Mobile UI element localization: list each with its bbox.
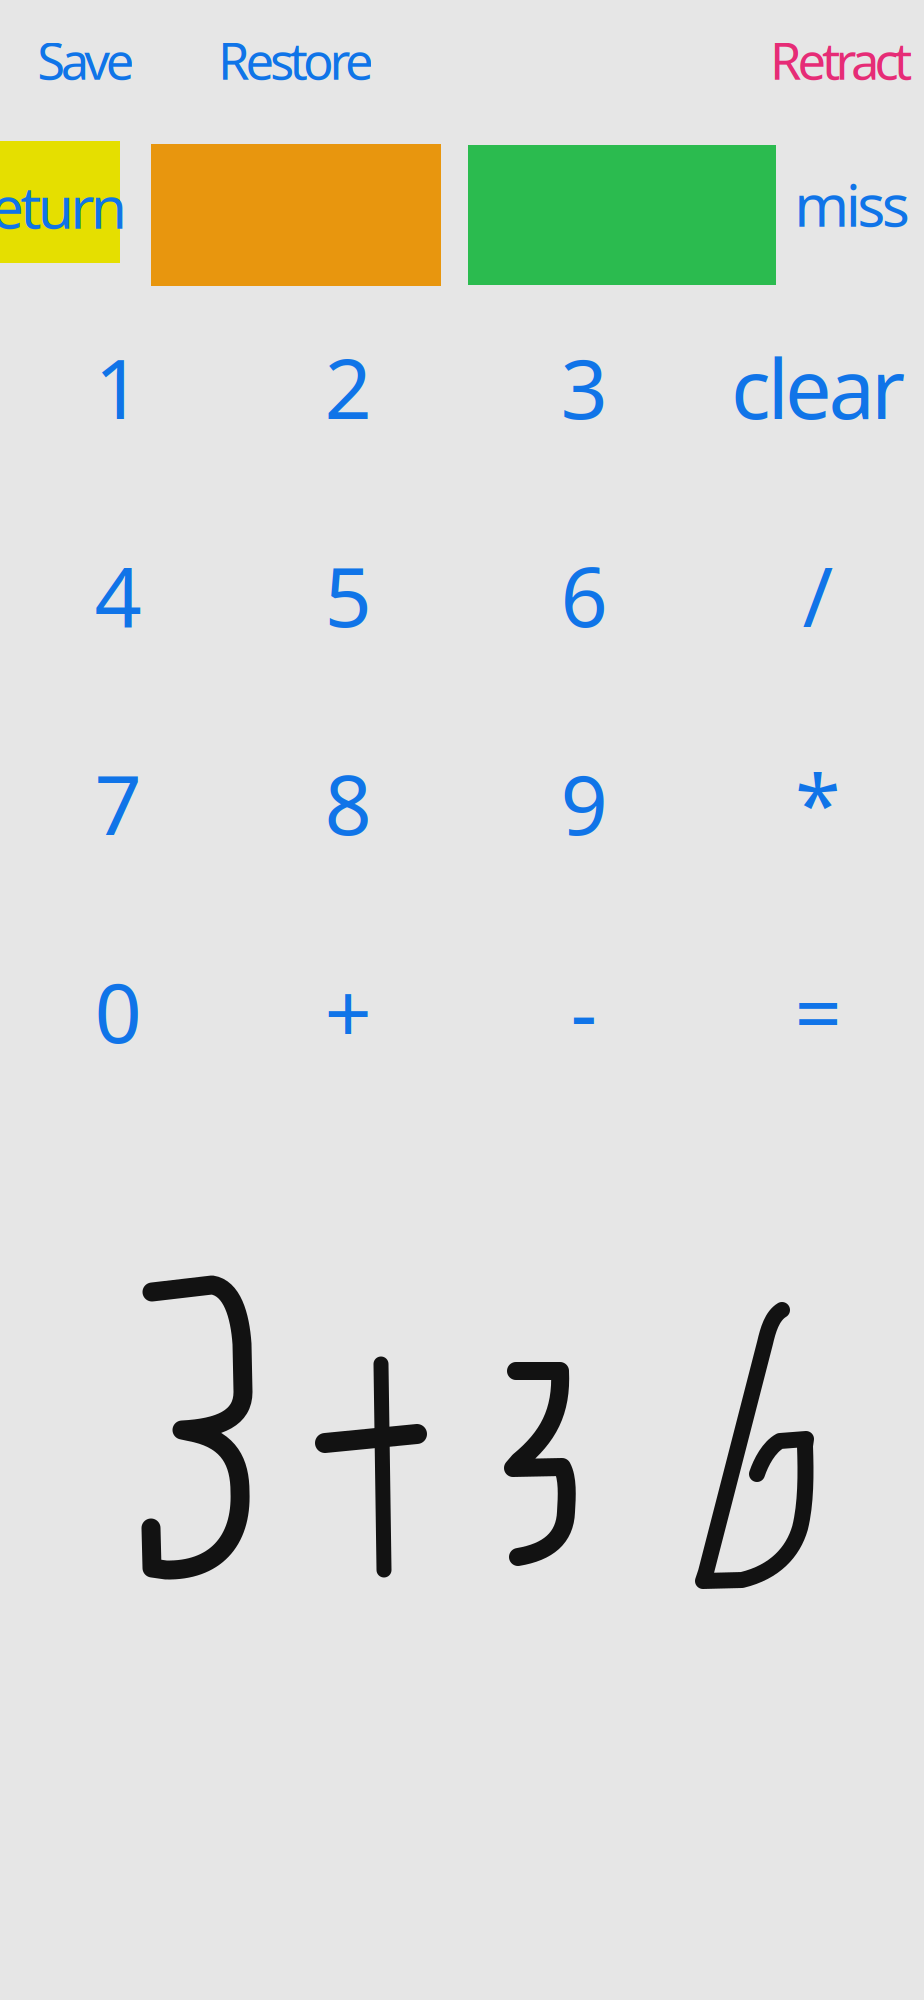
staticText: 4 (94, 540, 141, 650)
staticText: 0 (94, 956, 141, 1066)
staticText: 5 (324, 540, 371, 650)
button[interactable]: + (243, 911, 453, 1111)
button[interactable]: 8 (243, 703, 453, 903)
button[interactable]: Restore (218, 26, 374, 94)
button[interactable]: Retract (770, 26, 912, 94)
button[interactable]: = (713, 911, 923, 1111)
staticText: 6 (560, 540, 607, 650)
button[interactable]: miss (794, 165, 910, 243)
button[interactable]: clear (713, 287, 923, 487)
button[interactable]: 4 (13, 495, 223, 695)
button[interactable]: 7 (13, 703, 223, 903)
button[interactable]: / (713, 495, 923, 695)
button[interactable]: 1 (13, 287, 223, 487)
staticText: + (324, 956, 371, 1066)
staticText: - (570, 956, 597, 1066)
staticText: 7 (94, 748, 141, 858)
staticText: 9 (560, 748, 607, 858)
button[interactable]: Yellow pen (0, 141, 120, 263)
button[interactable]: 6 (479, 495, 689, 695)
button[interactable]: 5 (243, 495, 453, 695)
staticText: * (795, 748, 841, 858)
staticText: / (802, 540, 833, 650)
staticText: Retract (770, 26, 912, 94)
staticText: 8 (324, 748, 371, 858)
button[interactable]: 9 (479, 703, 689, 903)
staticText: miss (794, 165, 910, 243)
button[interactable]: Handwriting canvas (0, 1120, 924, 2000)
button[interactable]: - (479, 911, 689, 1111)
staticText: clear (731, 332, 905, 442)
staticText: 1 (94, 332, 141, 442)
button[interactable]: 3 (479, 287, 689, 487)
staticText: return (0, 167, 127, 245)
button[interactable]: 2 (243, 287, 453, 487)
staticText: 3 (560, 332, 607, 442)
staticText: = (794, 956, 841, 1066)
staticText: Save (37, 26, 135, 94)
button[interactable]: Save (37, 26, 135, 94)
staticText: Restore (218, 26, 374, 94)
button[interactable]: return (0, 167, 127, 245)
button[interactable]: 0 (13, 911, 223, 1111)
button[interactable]: * (713, 703, 923, 903)
staticText: 2 (324, 332, 371, 442)
